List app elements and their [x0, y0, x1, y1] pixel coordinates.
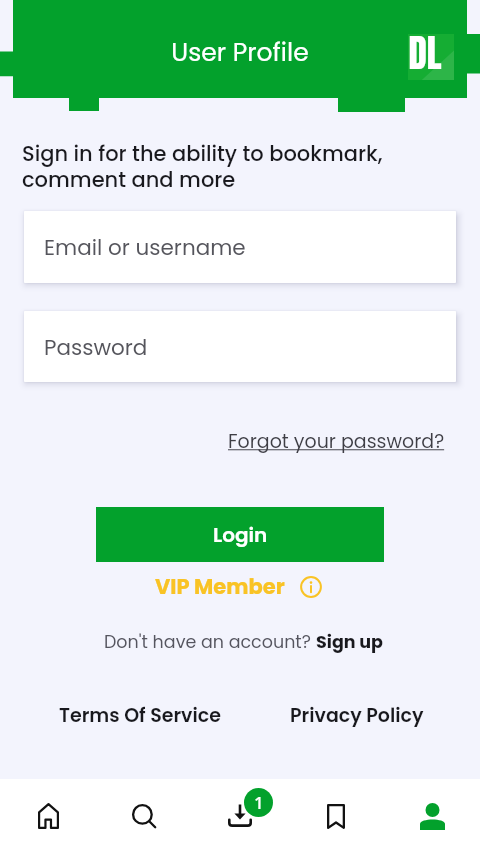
staticText: Sign in for the ability to bookmark, com…	[22, 139, 383, 194]
button[interactable]: Password	[24, 311, 456, 382]
staticText: DL	[402, 25, 448, 71]
button[interactable]: Sign up	[316, 630, 383, 655]
staticText: Privacy Policy	[290, 702, 424, 729]
staticText: Email or username	[44, 232, 246, 262]
button[interactable]: Home	[0, 779, 96, 853]
staticText: Login	[213, 521, 268, 549]
button[interactable]: Profile	[384, 779, 480, 853]
button[interactable]: Downloads	[192, 779, 288, 853]
button[interactable]: Bookmarks	[288, 779, 384, 853]
button[interactable]: Search	[96, 779, 192, 853]
staticText: VIP Member	[155, 572, 285, 601]
button[interactable]: Terms Of Service	[59, 702, 221, 729]
staticText: Forgot your password?	[228, 428, 445, 455]
staticText: User Profile	[0, 35, 480, 70]
button[interactable]: Privacy Policy	[290, 702, 424, 729]
staticText: Terms Of Service	[59, 702, 221, 729]
staticText: Password	[44, 332, 148, 362]
button[interactable]: App logo	[408, 34, 454, 80]
button[interactable]: Email or username	[24, 211, 456, 283]
button[interactable]: Login	[96, 507, 384, 562]
staticText: 1	[254, 791, 264, 814]
staticText: Don't have an account?	[104, 630, 316, 655]
button[interactable]: VIP Member	[0, 572, 478, 601]
button[interactable]: Forgot your password?	[228, 428, 445, 455]
